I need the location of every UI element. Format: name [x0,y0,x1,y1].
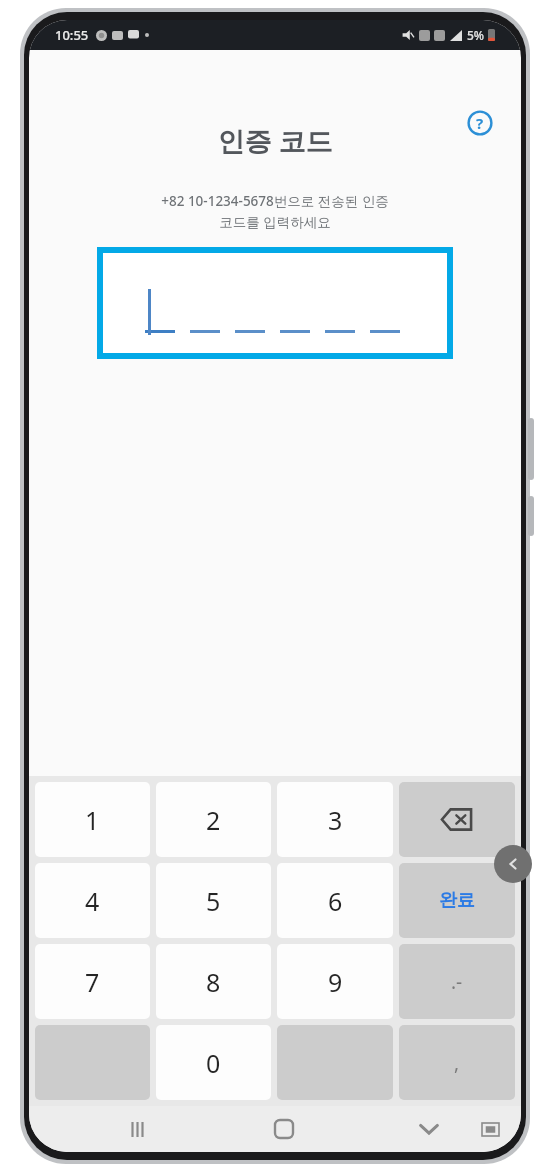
staticText: 6 [328,884,343,918]
button[interactable]: 8 [156,944,271,1019]
button[interactable]: 4 [35,863,150,938]
staticText: ? [476,113,484,133]
button[interactable]: Recents [117,1107,161,1151]
staticText: 5 [206,884,221,918]
button[interactable]: 3 [277,782,393,857]
staticText: , [454,1050,460,1076]
button[interactable]: Hide keyboard [407,1107,451,1151]
staticText: 5% [467,27,485,43]
button[interactable]: 0 [156,1025,271,1100]
button[interactable]: 1 [35,782,150,857]
staticText: +82 10-1234-5678번으로 전송된 인증 코드를 입력하세요 [71,192,479,231]
button[interactable]: Edge panel [494,845,532,883]
button[interactable]: 2 [156,782,271,857]
button[interactable]: 9 [277,944,393,1019]
button[interactable]: Home [262,1107,306,1151]
button[interactable]: 7 [35,944,150,1019]
staticText: 7 [85,965,100,999]
staticText: 9 [328,965,343,999]
button[interactable]: 5 [156,863,271,938]
button[interactable]: Help [461,104,499,142]
button[interactable] [97,247,453,359]
button[interactable]: Switch keyboard [473,1112,507,1146]
staticText: 8 [206,965,221,999]
staticText: 인증 코드 [217,122,333,159]
staticText: 1 [85,803,100,837]
staticText: 0 [206,1046,221,1080]
button[interactable]: Backspace [399,782,515,857]
staticText: 2 [206,803,221,837]
staticText: 3 [328,803,343,837]
staticText: .- [451,969,463,995]
button[interactable]: 완료 [399,863,515,938]
staticText: 4 [85,884,100,918]
staticText: 10:55 [55,26,89,44]
staticText: 완료 [439,889,475,912]
button[interactable]: 6 [277,863,393,938]
